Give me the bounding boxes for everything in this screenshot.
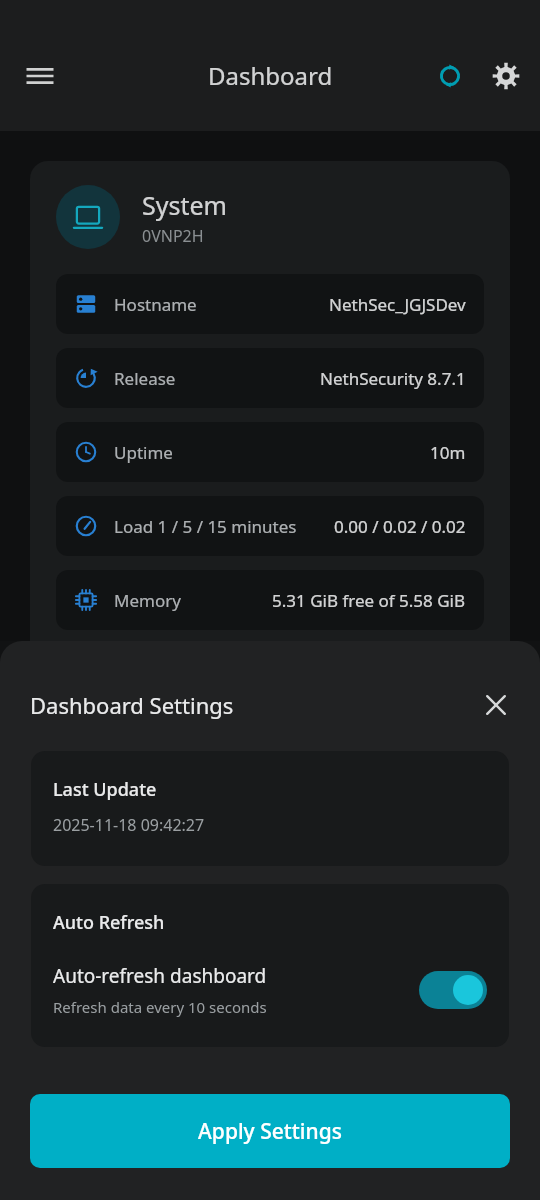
button[interactable]: Refresh: [422, 48, 478, 104]
staticText: Release: [114, 367, 176, 390]
button[interactable]: Apply Settings: [30, 1094, 510, 1168]
button[interactable]: Hostname: [56, 274, 484, 334]
button[interactable]: Load 1 / 5 / 15 minutes: [56, 496, 484, 556]
staticText: Auto-refresh dashboard: [53, 963, 267, 989]
button[interactable]: Memory: [56, 570, 484, 630]
staticText: Uptime: [114, 441, 173, 464]
staticText: 0VNP2H: [142, 225, 204, 247]
staticText: NethSecurity 8.7.1: [320, 367, 466, 390]
staticText: Dashboard: [208, 59, 333, 92]
staticText: Apply Settings: [198, 1117, 342, 1146]
staticText: 0.00 / 0.02 / 0.02: [334, 515, 466, 538]
staticText: 2025-11-18 09:42:27: [53, 814, 205, 836]
staticText: System: [142, 188, 227, 222]
button[interactable]: Close: [470, 679, 522, 731]
button[interactable]: Release: [56, 348, 484, 408]
button[interactable]: [56, 644, 484, 704]
staticText: Load 1 / 5 / 15 minutes: [114, 515, 297, 538]
button[interactable]: Menu: [4, 40, 76, 112]
staticText: Dashboard Settings: [30, 690, 234, 720]
staticText: Memory: [114, 589, 181, 612]
button[interactable]: Uptime: [56, 422, 484, 482]
button[interactable]: Settings: [478, 48, 534, 104]
staticText: Refresh data every 10 seconds: [53, 997, 267, 1017]
staticText: 5.31 GiB free of 5.58 GiB: [272, 589, 466, 612]
staticText: Auto Refresh: [53, 910, 165, 935]
button[interactable]: Auto-refresh dashboard: [31, 935, 509, 1047]
staticText: Hostname: [114, 293, 197, 316]
staticText: NethSec_JGJSDev: [329, 293, 466, 316]
staticText: Last Update: [53, 777, 157, 802]
staticText: 10m: [430, 441, 466, 464]
